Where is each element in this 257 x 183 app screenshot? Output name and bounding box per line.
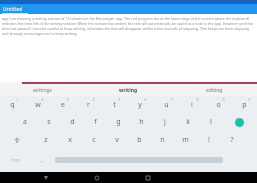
button[interactable]: v bbox=[105, 131, 128, 148]
button[interactable]: f bbox=[84, 113, 107, 131]
staticText: f bbox=[94, 117, 97, 127]
button[interactable]: editing bbox=[171, 84, 257, 96]
button[interactable]: 4 bbox=[75, 96, 101, 113]
staticText: app Can showing a writing session of 13 … bbox=[2, 16, 255, 36]
staticText: ! bbox=[208, 135, 210, 145]
staticText: z bbox=[44, 135, 48, 145]
staticText: writing bbox=[119, 87, 138, 94]
button[interactable]: n bbox=[151, 131, 174, 148]
button[interactable]: g bbox=[107, 113, 130, 131]
staticText: c bbox=[92, 135, 96, 145]
staticText: e bbox=[61, 100, 65, 110]
button[interactable]: h bbox=[130, 113, 153, 131]
staticText: x bbox=[68, 135, 72, 145]
staticText: 5 bbox=[118, 97, 121, 102]
staticText: h bbox=[139, 117, 144, 127]
staticText: 6 bbox=[144, 97, 147, 102]
staticText: 9 bbox=[222, 97, 225, 102]
button[interactable]: writing bbox=[85, 84, 171, 96]
button[interactable]: j bbox=[153, 113, 176, 131]
button[interactable]: ? bbox=[220, 131, 243, 148]
button[interactable]: ! bbox=[197, 131, 220, 148]
staticText: p bbox=[242, 100, 247, 110]
staticText: l bbox=[210, 117, 212, 127]
button[interactable]: z bbox=[34, 131, 58, 148]
staticText: s bbox=[47, 117, 51, 127]
staticText: q bbox=[10, 100, 15, 110]
button[interactable]: Enter bbox=[222, 113, 257, 131]
staticText: ?123 bbox=[11, 158, 20, 163]
button[interactable]: 6 bbox=[127, 96, 153, 113]
staticText: , bbox=[41, 156, 43, 164]
button[interactable]: m bbox=[174, 131, 197, 148]
button[interactable]: 7 bbox=[153, 96, 179, 113]
button[interactable]: ?123 bbox=[0, 148, 30, 172]
staticText: editing bbox=[206, 87, 223, 94]
staticText: u bbox=[164, 100, 169, 110]
button[interactable]: 5 bbox=[101, 96, 127, 113]
button[interactable]: b bbox=[128, 131, 151, 148]
staticText: 0 bbox=[248, 97, 251, 102]
button[interactable]: 0 bbox=[231, 96, 257, 113]
staticText: r bbox=[87, 100, 90, 110]
staticText: d bbox=[70, 117, 75, 127]
button[interactable]: a bbox=[13, 113, 37, 131]
button[interactable]: d bbox=[61, 113, 84, 131]
staticText: b bbox=[137, 135, 142, 145]
staticText: g bbox=[116, 117, 121, 127]
staticText: i bbox=[191, 100, 193, 110]
staticText: y bbox=[138, 100, 142, 110]
button[interactable]: 9 bbox=[205, 96, 231, 113]
staticText: 7 bbox=[170, 97, 173, 102]
button[interactable]: 2 bbox=[25, 96, 50, 113]
staticText: Untitled bbox=[3, 6, 23, 13]
button[interactable]: Home bbox=[89, 172, 105, 183]
staticText: 8 bbox=[196, 97, 199, 102]
button[interactable]: x bbox=[58, 131, 82, 148]
button[interactable]: c bbox=[82, 131, 105, 148]
staticText: n bbox=[160, 135, 165, 145]
button[interactable]: l bbox=[199, 113, 222, 131]
staticText: 1 bbox=[16, 97, 19, 102]
staticText: w bbox=[35, 100, 41, 110]
button[interactable]: 1 bbox=[0, 96, 25, 113]
button[interactable]: writings bbox=[0, 84, 85, 96]
button[interactable]: 8 bbox=[179, 96, 205, 113]
staticText: . bbox=[235, 157, 237, 164]
button[interactable]: k bbox=[176, 113, 199, 131]
staticText: ? bbox=[230, 135, 234, 145]
button[interactable]: s bbox=[37, 113, 61, 131]
button[interactable]: Back bbox=[38, 172, 54, 183]
staticText: v bbox=[115, 135, 119, 145]
staticText: t bbox=[113, 100, 116, 110]
staticText: 4 bbox=[92, 97, 95, 102]
staticText: a bbox=[23, 117, 27, 127]
staticText: writings bbox=[33, 87, 52, 94]
staticText: 3 bbox=[66, 97, 69, 102]
staticText: 2 bbox=[41, 97, 44, 102]
button[interactable]: Recent apps bbox=[140, 172, 156, 183]
staticText: m bbox=[182, 135, 189, 145]
staticText: j bbox=[164, 117, 166, 127]
button[interactable]: Shift bbox=[0, 131, 34, 148]
staticText: k bbox=[186, 117, 190, 127]
button[interactable]: 3 bbox=[50, 96, 75, 113]
staticText: o bbox=[216, 100, 221, 110]
